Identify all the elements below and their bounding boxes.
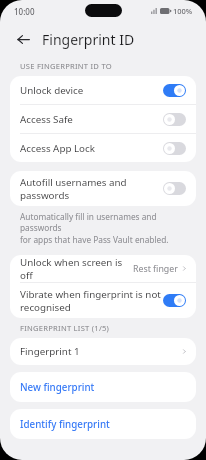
button[interactable]: Unlock device [10,76,196,104]
button[interactable]: Autofill usernames and passwords [10,171,196,206]
button[interactable]: Identify fingerprint [10,409,196,439]
button[interactable]: On [163,84,186,97]
staticText: Vibrate when fingerprint is not recognis… [20,288,163,314]
button[interactable]: Access Safe [10,105,196,133]
button[interactable]: Off [163,113,186,126]
staticText: USE FINGERPRINT ID TO [20,61,112,71]
button[interactable]: Access App Lock [10,134,196,162]
staticText: New fingerprint [20,381,95,394]
button[interactable]: Unlock when screen is off [10,255,196,282]
staticText: Unlock device [20,84,163,97]
staticText: Identify fingerprint [20,418,110,431]
staticText: Access Safe [20,113,163,126]
staticText: Unlock when screen is off [20,256,133,282]
staticText: Rest finger [133,263,178,275]
button[interactable]: On [163,294,186,307]
staticText: FINGERPRINT LIST (1/5) [20,323,110,333]
button[interactable]: Off [163,142,186,155]
button[interactable]: Off [163,182,186,195]
staticText: Fingerprint 1 [20,345,181,358]
staticText: 100% [173,6,193,16]
staticText: Automatically fill in usernames and pass… [20,211,192,245]
staticText: Fingerprint ID [42,30,135,49]
staticText: 10:00 [14,6,35,17]
button[interactable]: Vibrate when fingerprint is not recognis… [10,283,196,318]
button[interactable]: New fingerprint [10,372,196,402]
button[interactable]: Fingerprint 1 [10,338,196,365]
staticText: Autofill usernames and passwords [20,176,163,202]
button[interactable]: Back [12,28,34,50]
staticText: Access App Lock [20,142,163,155]
